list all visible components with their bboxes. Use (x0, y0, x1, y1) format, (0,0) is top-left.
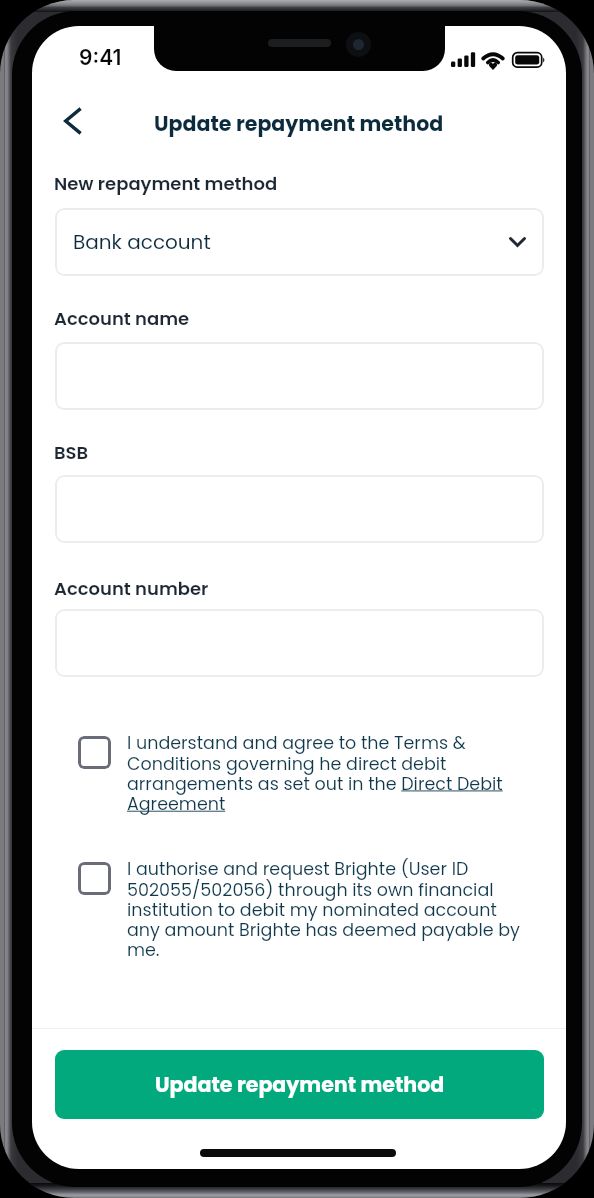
button[interactable] (55, 475, 544, 543)
button[interactable] (55, 609, 544, 677)
button[interactable]: Checkbox (78, 736, 111, 769)
staticText: Bank account (73, 228, 211, 256)
button[interactable]: Back (49, 98, 95, 144)
staticText: 9:41 (79, 45, 122, 70)
staticText: I understand and agree to the Terms & Co… (127, 731, 527, 816)
staticText: I authorise and request Brighte (User ID… (127, 857, 527, 962)
button[interactable] (55, 342, 544, 410)
staticText: Update repayment method (155, 1070, 445, 1099)
staticText: BSB (54, 440, 89, 465)
button[interactable]: Bank account (55, 208, 544, 276)
button[interactable]: Checkbox (78, 862, 111, 895)
staticText: Account name (54, 306, 190, 331)
button[interactable]: Update repayment method (55, 1050, 544, 1119)
staticText: New repayment method (54, 171, 278, 196)
staticText: Account number (54, 576, 209, 601)
staticText: Update repayment method (154, 109, 444, 138)
